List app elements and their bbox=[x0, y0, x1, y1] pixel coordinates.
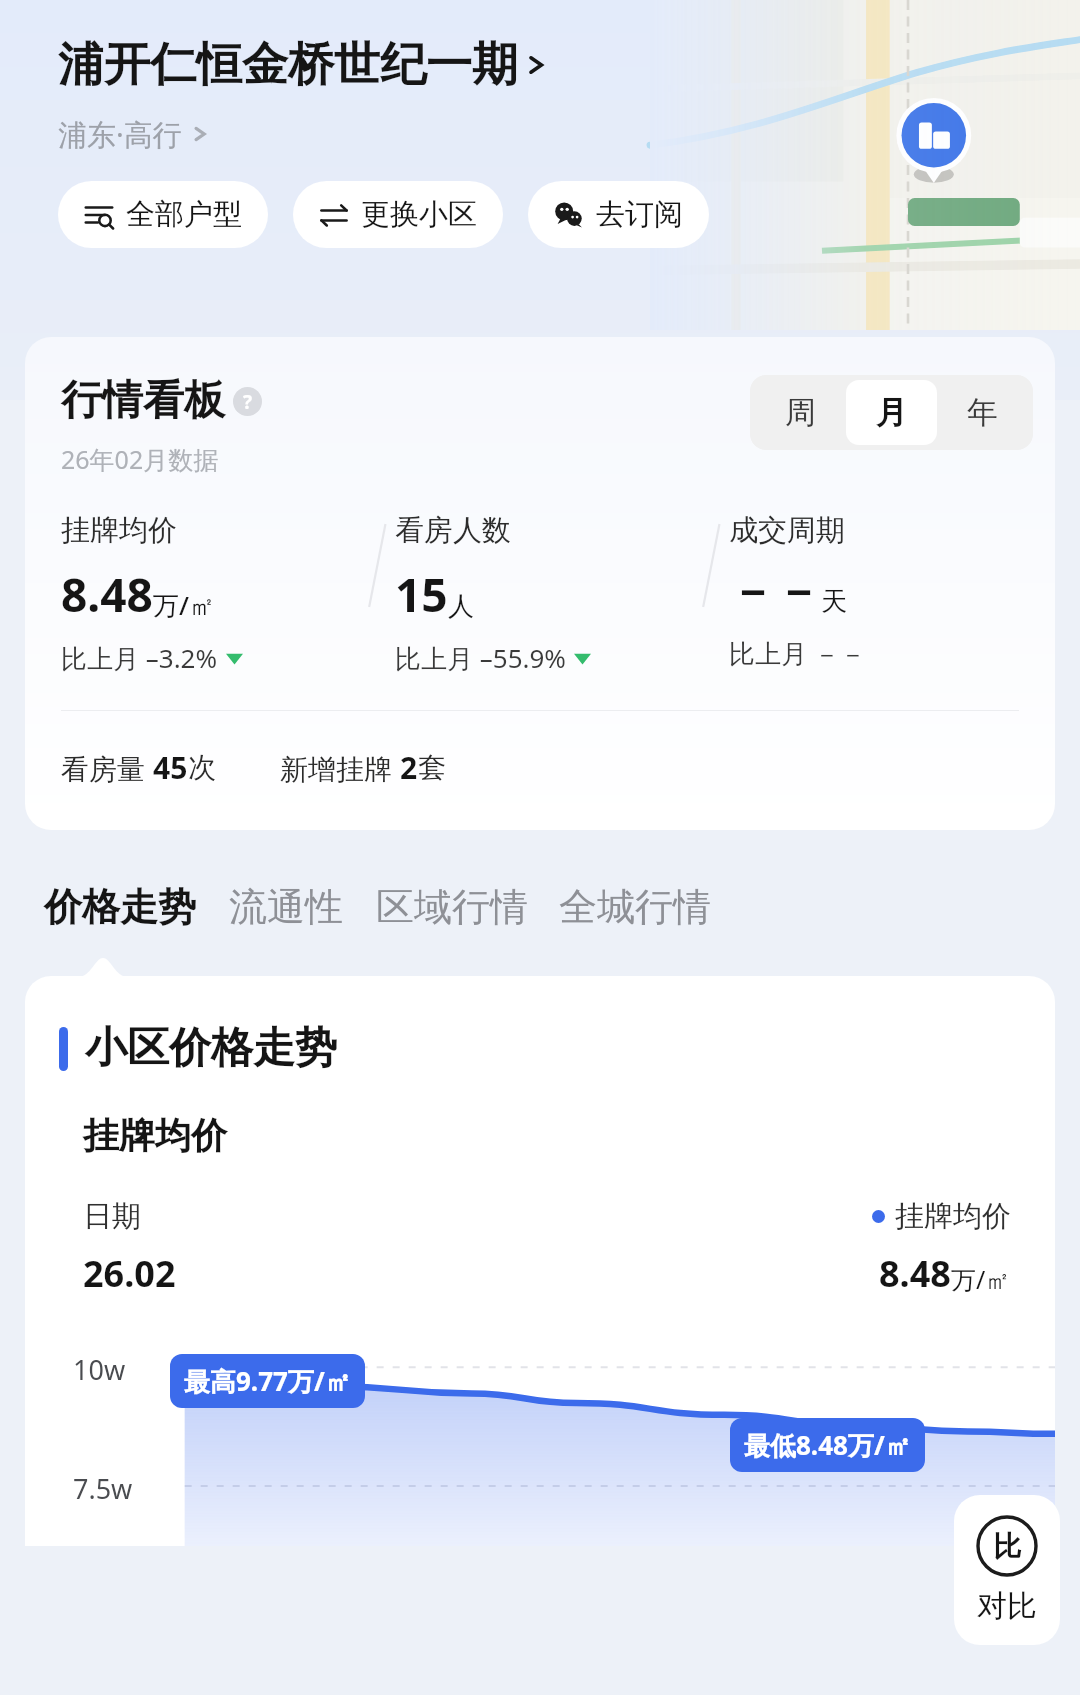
staticText: 去订阅 bbox=[596, 196, 683, 233]
staticText: 挂牌均价 bbox=[895, 1198, 1011, 1235]
staticText: 比上月 －－ bbox=[729, 635, 866, 671]
button[interactable]: 去订阅 bbox=[528, 181, 709, 248]
button[interactable]: 全城行情 bbox=[559, 883, 711, 931]
staticText: 流通性 bbox=[229, 883, 343, 931]
button[interactable]: 比 bbox=[954, 1495, 1060, 1645]
staticText: 价格走势 bbox=[44, 883, 196, 931]
button[interactable]: 挂牌均价 bbox=[61, 512, 361, 676]
staticText: 8.48 bbox=[879, 1249, 951, 1298]
staticText: 10w bbox=[73, 1351, 126, 1388]
staticText: 比上月 –3.2% bbox=[61, 640, 218, 676]
staticText: 全城行情 bbox=[559, 883, 711, 931]
staticText: 万/㎡ bbox=[153, 587, 216, 623]
staticText: 人 bbox=[448, 590, 474, 623]
staticText: 最低8.48万/㎡ bbox=[744, 1427, 911, 1463]
button[interactable]: 看房人数 bbox=[395, 512, 695, 676]
button[interactable]: 周 bbox=[755, 380, 846, 445]
staticText: 7.5w bbox=[73, 1470, 133, 1507]
button[interactable]: 价格走势 bbox=[44, 883, 196, 931]
button[interactable]: 新增挂牌 bbox=[280, 747, 446, 788]
staticText: ? bbox=[243, 389, 253, 415]
staticText: 挂牌均价 bbox=[61, 512, 177, 549]
staticText: 比 bbox=[993, 1529, 1021, 1564]
button[interactable]: 成交周期 bbox=[729, 512, 1029, 671]
staticText: －－ bbox=[729, 563, 821, 621]
staticText: 45 bbox=[153, 747, 188, 788]
staticText: 最高9.77万/㎡ bbox=[184, 1363, 351, 1399]
staticText: 比上月 –55.9% bbox=[395, 640, 566, 676]
staticText: 挂牌均价 bbox=[83, 1113, 227, 1158]
staticText: 月 bbox=[876, 393, 907, 432]
button[interactable]: 区域行情 bbox=[376, 883, 528, 931]
staticText: 26.02 bbox=[83, 1249, 176, 1298]
staticText: 对比 bbox=[977, 1587, 1037, 1625]
button[interactable]: 浦东·高行 bbox=[58, 114, 207, 154]
staticText: 年 bbox=[967, 393, 998, 432]
staticText: 天 bbox=[821, 585, 847, 618]
staticText: 次 bbox=[188, 750, 216, 785]
staticText: 看房量 bbox=[61, 749, 153, 787]
staticText: 行情看板 bbox=[61, 375, 225, 427]
staticText: 成交周期 bbox=[729, 512, 845, 549]
button[interactable]: 浦开仁恒金桥世纪一期 bbox=[58, 36, 545, 94]
staticText: 浦东·高行 bbox=[58, 114, 182, 154]
button[interactable]: 帮助 bbox=[233, 387, 262, 416]
staticText: 15 bbox=[395, 563, 448, 626]
staticText: 新增挂牌 bbox=[280, 749, 400, 787]
staticText: 8.48 bbox=[61, 563, 153, 626]
staticText: 万/㎡ bbox=[951, 1262, 1011, 1296]
staticText: 小区价格走势 bbox=[85, 1022, 337, 1075]
button[interactable]: 更换小区 bbox=[293, 181, 503, 248]
button[interactable]: 全部户型 bbox=[58, 181, 268, 248]
button[interactable]: 月 bbox=[846, 380, 937, 445]
staticText: 日期 bbox=[83, 1198, 141, 1235]
staticText: 2 bbox=[400, 747, 418, 788]
staticText: 26年02月数据 bbox=[61, 442, 219, 476]
button[interactable]: 流通性 bbox=[229, 883, 343, 931]
staticText: 更换小区 bbox=[361, 196, 477, 233]
staticText: 套 bbox=[418, 750, 446, 785]
staticText: 周 bbox=[785, 393, 816, 432]
staticText: 看房人数 bbox=[395, 512, 511, 549]
staticText: 全部户型 bbox=[126, 196, 242, 233]
button[interactable]: 看房量 bbox=[61, 747, 216, 788]
staticText: 浦开仁恒金桥世纪一期 bbox=[58, 36, 518, 94]
staticText: 区域行情 bbox=[376, 883, 528, 931]
button[interactable]: 年 bbox=[937, 380, 1028, 445]
